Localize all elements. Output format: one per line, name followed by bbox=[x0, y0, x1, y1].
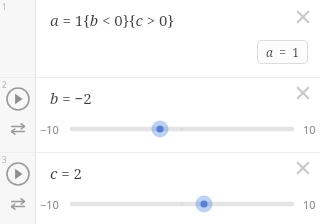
staticText: a = 1 bbox=[266, 44, 299, 60]
staticText: −10 bbox=[40, 197, 59, 212]
button[interactable]: Delete expression bbox=[290, 4, 316, 30]
staticText: c = 2 bbox=[50, 163, 82, 183]
button[interactable]: Convert to slider bbox=[7, 193, 29, 215]
staticText: 10 bbox=[303, 197, 316, 212]
button[interactable]: Play animation bbox=[5, 86, 31, 112]
button[interactable]: Convert to slider bbox=[7, 118, 29, 140]
button[interactable]: a = 1 bbox=[257, 40, 308, 64]
staticText: 1 bbox=[2, 1, 7, 12]
button[interactable]: Delete expression bbox=[290, 155, 316, 181]
staticText: 3 bbox=[2, 154, 7, 165]
button[interactable]: Delete expression bbox=[290, 80, 316, 106]
staticText: 10 bbox=[303, 122, 316, 137]
staticText: b = −2 bbox=[50, 88, 92, 108]
button[interactable]: Play animation bbox=[5, 161, 31, 187]
staticText: 2 bbox=[2, 79, 7, 90]
staticText: a = 1{b < 0}{c > 0} bbox=[50, 10, 174, 30]
staticText: −10 bbox=[40, 122, 59, 137]
